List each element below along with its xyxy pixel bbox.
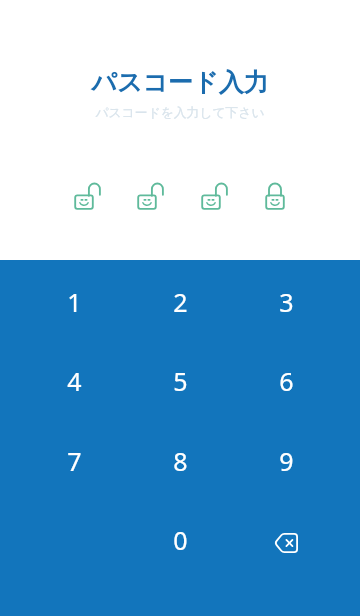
button[interactable]: 8 [127, 421, 233, 501]
button[interactable]: Backspace [233, 500, 339, 580]
button[interactable]: 3 [233, 262, 339, 342]
staticText: 1 [67, 285, 82, 319]
staticText: 4 [67, 364, 82, 398]
button[interactable]: 6 [233, 341, 339, 421]
staticText: 0 [173, 523, 188, 557]
button[interactable]: 4 [21, 341, 127, 421]
staticText: 2 [173, 285, 188, 319]
button[interactable]: 7 [21, 421, 127, 501]
button[interactable]: 0 [127, 500, 233, 580]
staticText: パスコード入力 [91, 67, 269, 98]
button[interactable]: 2 [127, 262, 233, 342]
staticText: 8 [173, 444, 188, 478]
button[interactable]: 9 [233, 421, 339, 501]
button[interactable]: 1 [21, 262, 127, 342]
staticText: 3 [279, 285, 294, 319]
staticText: パスコードを入力して下さい [95, 105, 265, 121]
staticText: 6 [279, 364, 294, 398]
staticText: 7 [67, 444, 82, 478]
staticText: 5 [173, 364, 188, 398]
button[interactable]: 5 [127, 341, 233, 421]
staticText: 9 [279, 444, 294, 478]
